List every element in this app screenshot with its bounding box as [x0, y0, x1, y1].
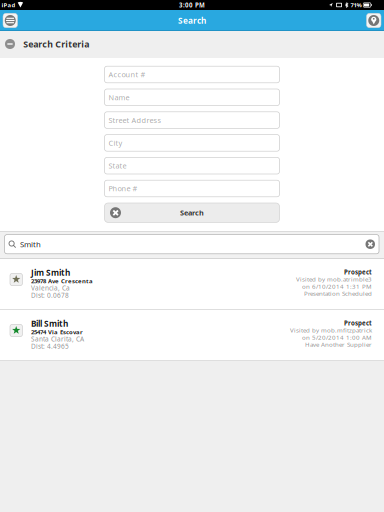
- staticText: Name: [108, 92, 129, 102]
- button[interactable]: Location: [366, 13, 381, 28]
- staticText: 71%: [350, 1, 361, 9]
- staticText: Prospect: [344, 268, 372, 276]
- staticText: Visited by mob.mfitzpatrick: [290, 326, 372, 334]
- button[interactable]: Search Criteria: [0, 31, 384, 57]
- staticText: Bill Smith: [31, 318, 68, 329]
- staticText: Search: [178, 15, 206, 26]
- button[interactable]: Phone #: [104, 180, 279, 197]
- button[interactable]: Street Address: [104, 112, 279, 128]
- staticText: Street Address: [108, 115, 161, 125]
- button[interactable]: Account #: [104, 66, 279, 83]
- staticText: 3:00 PM: [179, 1, 205, 9]
- staticText: Dist: 4.4965: [31, 342, 69, 351]
- button[interactable]: Bill Smith: [0, 310, 384, 361]
- button[interactable]: Search: [104, 203, 279, 222]
- staticText: Dist: 0.0678: [31, 291, 69, 300]
- staticText: Smith: [20, 239, 41, 249]
- staticText: Jim Smith: [31, 267, 70, 278]
- staticText: State: [108, 161, 126, 171]
- button[interactable]: Clear search: [365, 239, 375, 249]
- staticText: Presentation Scheduled: [304, 289, 372, 298]
- staticText: Phone #: [108, 183, 137, 193]
- button[interactable]: Jim Smith: [0, 259, 384, 310]
- staticText: Search Criteria: [23, 38, 89, 50]
- staticText: 23978 Ave Crescenta: [31, 277, 93, 285]
- staticText: on 5/20/2014 1:00 AM: [302, 333, 372, 341]
- staticText: iPad: [1, 1, 15, 9]
- staticText: on 6/10/2014 1:31 PM: [302, 282, 372, 290]
- staticText: 25474 Via Escovar: [31, 328, 83, 336]
- button[interactable]: Name: [104, 89, 279, 106]
- staticText: Have Another Supplier: [305, 340, 372, 349]
- staticText: Account #: [108, 69, 145, 79]
- staticText: Prospect: [344, 319, 372, 327]
- button[interactable]: State: [104, 157, 279, 174]
- staticText: City: [108, 138, 122, 148]
- staticText: Santa Clarita, CA: [31, 334, 84, 343]
- button[interactable]: Menu: [3, 13, 17, 28]
- staticText: Visited by mob.atrimble3: [296, 275, 372, 283]
- staticText: Search: [180, 208, 204, 218]
- button[interactable]: City: [104, 135, 279, 151]
- staticText: Valencia, Ca: [31, 283, 70, 292]
